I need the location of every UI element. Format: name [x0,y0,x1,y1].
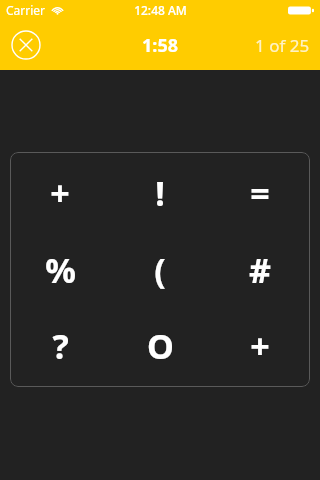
button[interactable]: Close [9,28,43,62]
staticText: + [250,323,270,369]
staticText: 1 of 25 [255,34,310,57]
staticText: ! [155,170,165,216]
staticText: Carrier [6,2,46,18]
button[interactable]: ? [10,310,110,382]
button[interactable]: ( [110,234,210,306]
staticText: % [45,247,76,293]
button[interactable]: = [210,157,310,229]
staticText: ? [52,323,69,369]
staticText: # [249,247,271,293]
button[interactable]: # [210,234,310,306]
staticText: + [50,170,70,216]
staticText: 1:58 [142,33,178,58]
button[interactable]: + [10,157,110,229]
staticText: O [147,323,174,369]
button[interactable]: + [210,310,310,382]
button[interactable]: ! [110,157,210,229]
button[interactable]: O [110,310,210,382]
button[interactable]: % [10,234,110,306]
staticText: = [250,170,270,216]
staticText: ( [154,247,166,293]
staticText: 12:48 AM [134,2,187,18]
